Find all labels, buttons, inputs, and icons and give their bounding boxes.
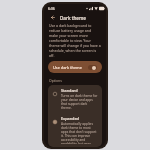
- button[interactable]: Standard: [48, 85, 102, 113]
- staticText: 6:36: [48, 6, 55, 11]
- button[interactable]: Back: [48, 13, 57, 22]
- staticText: Use a dark background to reduce battery …: [49, 23, 101, 58]
- staticText: Use dark theme: [53, 65, 82, 70]
- staticText: Automatically applies dark theme to most…: [61, 122, 98, 144]
- staticText: Dark theme: [60, 15, 86, 21]
- staticText: Turns on dark theme for your device and …: [61, 94, 98, 110]
- staticText: Expanded: [61, 116, 79, 121]
- button[interactable]: Expanded: [48, 113, 102, 147]
- button[interactable]: Use dark theme: [48, 61, 102, 73]
- staticText: Options: [49, 78, 62, 83]
- staticText: Standard: [61, 88, 78, 93]
